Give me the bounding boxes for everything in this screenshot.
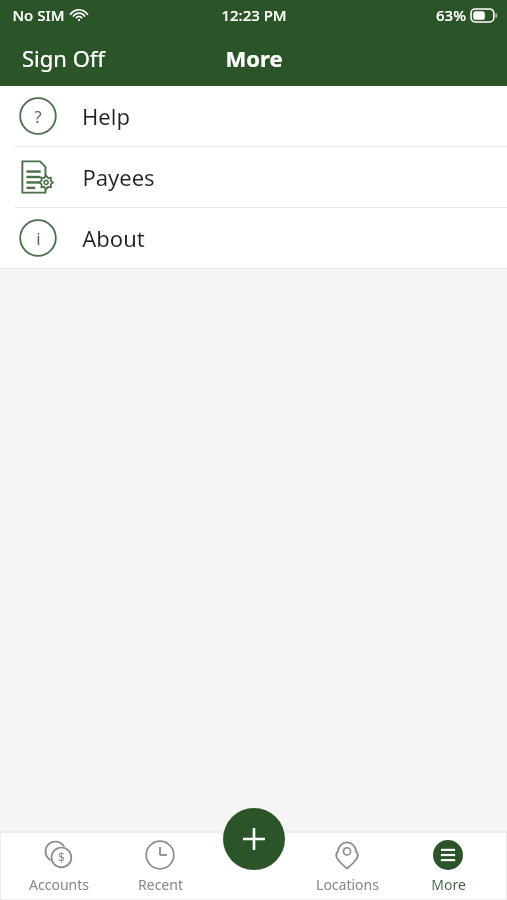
button[interactable]: i [0, 208, 507, 268]
staticText: No SIM [12, 5, 65, 25]
staticText: Payees [82, 162, 155, 192]
button[interactable]: Payees [0, 147, 507, 207]
button[interactable]: Recent [118, 835, 202, 898]
staticText: More [225, 43, 283, 73]
staticText: ? [34, 105, 42, 128]
staticText: 12:23 PM [221, 5, 287, 25]
staticText: Recent [138, 875, 183, 894]
button[interactable]: Sign Off [0, 35, 127, 81]
staticText: 63% [436, 5, 466, 25]
button[interactable]: Locations [305, 835, 389, 898]
staticText: Locations [316, 875, 379, 894]
staticText: Sign Off [22, 43, 105, 73]
staticText: More [431, 875, 466, 894]
button[interactable]: More [406, 835, 490, 898]
staticText: Accounts [29, 875, 89, 894]
button[interactable]: ? [0, 86, 507, 146]
staticText: i [36, 227, 41, 250]
button[interactable]: Add [223, 808, 285, 870]
staticText: Help [82, 101, 130, 131]
button[interactable]: $ [17, 835, 101, 898]
staticText: $ [58, 849, 65, 865]
staticText: About [82, 223, 145, 253]
